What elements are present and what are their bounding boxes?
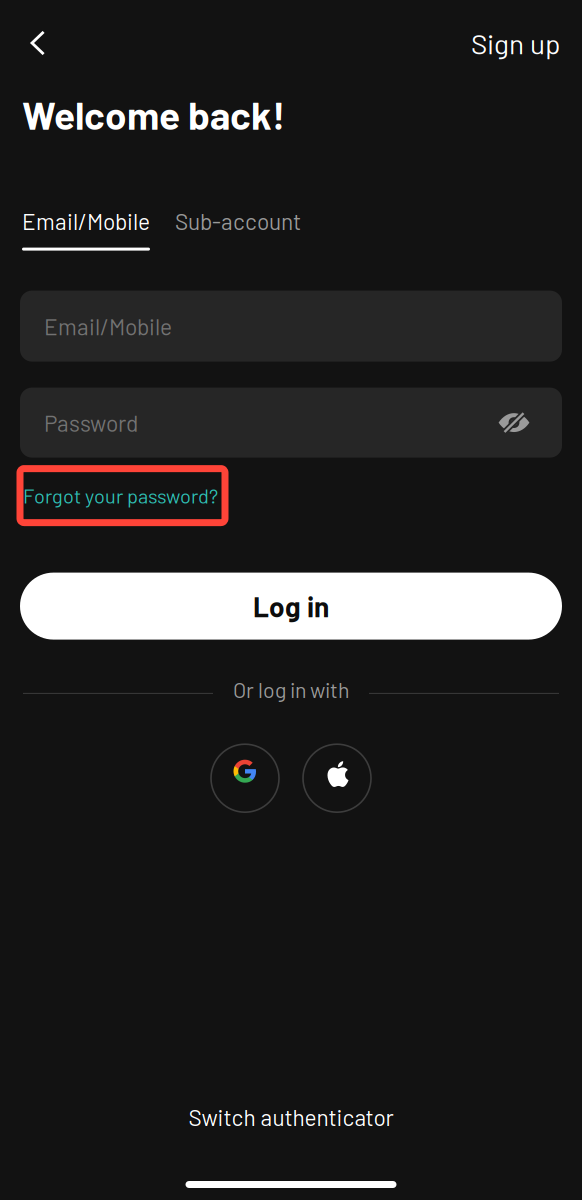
button[interactable]: Sub-account bbox=[175, 207, 301, 235]
staticText: Or log in with bbox=[233, 677, 349, 702]
button[interactable]: Show password bbox=[491, 400, 537, 446]
staticText: Forgot your password? bbox=[23, 484, 218, 508]
button[interactable]: Sign up bbox=[459, 17, 572, 69]
button[interactable]: Back bbox=[10, 17, 66, 69]
staticText: Switch authenticator bbox=[188, 1103, 393, 1131]
button[interactable]: Forgot your password? bbox=[20, 469, 225, 523]
staticText: Email/Mobile bbox=[44, 312, 172, 340]
button[interactable]: Switch authenticator bbox=[0, 1095, 582, 1139]
staticText: Sign up bbox=[471, 26, 560, 60]
button[interactable]: Email/Mobile bbox=[22, 207, 150, 251]
button[interactable]: Log in with Google bbox=[211, 744, 279, 812]
staticText: Welcome back! bbox=[22, 91, 285, 137]
staticText: Log in bbox=[253, 589, 329, 623]
button[interactable]: Log in bbox=[20, 573, 562, 640]
staticText: Sub-account bbox=[175, 207, 301, 235]
staticText: Password bbox=[44, 409, 138, 436]
button[interactable]: Log in with Apple bbox=[303, 744, 371, 812]
staticText: Email/Mobile bbox=[22, 207, 150, 235]
